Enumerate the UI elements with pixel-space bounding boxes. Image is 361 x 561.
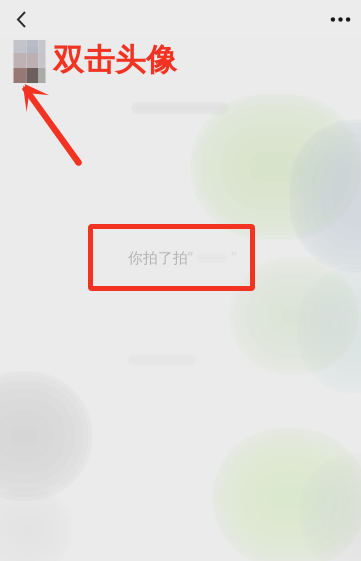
staticText: 你拍了拍 [128, 249, 188, 267]
staticText: “ [187, 246, 192, 266]
staticText: 双击头像 [53, 41, 177, 79]
staticText: ” [231, 246, 236, 266]
button[interactable]: Back [2, 3, 41, 36]
button[interactable]: More [315, 2, 361, 36]
